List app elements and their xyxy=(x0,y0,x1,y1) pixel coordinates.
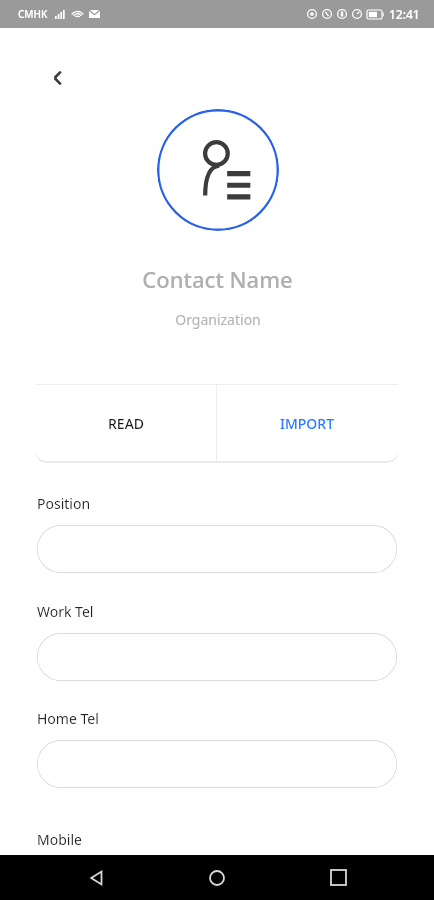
staticText: Organization xyxy=(175,310,261,329)
button[interactable] xyxy=(37,740,397,788)
staticText: Work Tel xyxy=(37,602,94,621)
button[interactable]: Back xyxy=(36,56,80,100)
staticText: IMPORT xyxy=(280,414,335,433)
button[interactable]: Contact avatar xyxy=(157,109,279,231)
staticText: READ xyxy=(108,414,145,433)
button[interactable]: IMPORT xyxy=(217,385,398,461)
button[interactable]: Home xyxy=(193,855,241,900)
staticText: Mobile xyxy=(37,830,82,849)
staticText: Position xyxy=(37,494,91,513)
button[interactable] xyxy=(37,525,397,573)
staticText: 12:41 xyxy=(389,6,420,22)
button[interactable] xyxy=(37,861,397,900)
button[interactable] xyxy=(37,633,397,681)
staticText: Contact Name xyxy=(142,264,293,294)
staticText: CMHK xyxy=(18,7,48,21)
button[interactable]: READ xyxy=(36,385,216,461)
button[interactable]: Back xyxy=(73,855,121,900)
staticText: Home Tel xyxy=(37,709,99,728)
button[interactable]: Recents xyxy=(314,855,362,900)
